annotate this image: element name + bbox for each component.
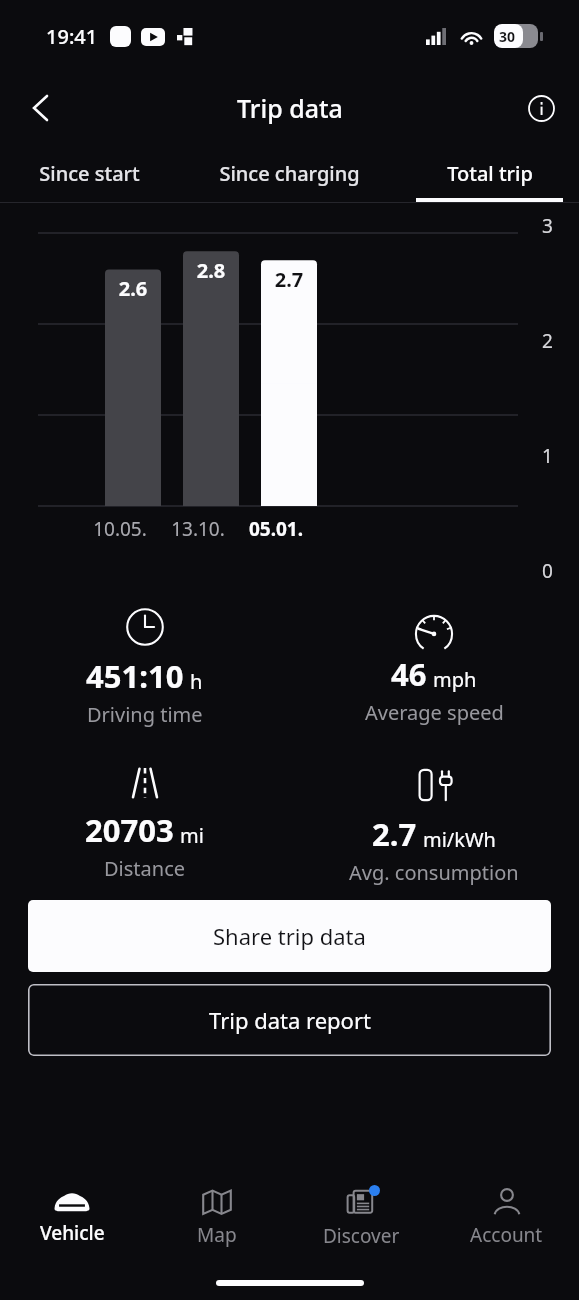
staticText: Avg. consumption <box>349 859 519 886</box>
staticText: 19:41 <box>46 23 98 50</box>
staticText: 05.01. <box>248 516 304 542</box>
button[interactable]: Information <box>519 86 563 130</box>
button[interactable]: Trip data report <box>28 984 551 1056</box>
button[interactable]: Account <box>434 1170 579 1266</box>
staticText: Average speed <box>365 699 504 726</box>
staticText: 2.7 <box>372 813 417 855</box>
button[interactable]: Vehicle <box>0 1170 144 1266</box>
button[interactable]: Since charging <box>178 144 400 202</box>
staticText: 30 <box>499 27 516 46</box>
staticText: 46 <box>391 653 427 695</box>
staticText: 10.05. <box>92 516 148 542</box>
staticText: 13.10. <box>170 516 226 542</box>
staticText: 20703 <box>85 809 174 851</box>
staticText: Since start <box>39 160 140 187</box>
staticText: Driving time <box>87 701 203 728</box>
staticText: mi/kWh <box>423 826 496 853</box>
button[interactable]: Discover <box>289 1170 434 1266</box>
staticText: 0 <box>542 558 553 584</box>
staticText: Discover <box>323 1223 400 1249</box>
button[interactable]: Since start <box>0 144 178 202</box>
staticText: Share trip data <box>213 921 366 951</box>
staticText: 1 <box>542 443 553 469</box>
staticText: Account <box>470 1222 543 1248</box>
staticText: Trip data report <box>209 1005 371 1035</box>
button[interactable]: Back <box>14 82 66 134</box>
button[interactable]: Map <box>144 1170 289 1266</box>
staticText: mph <box>433 666 477 693</box>
staticText: 451:10 <box>86 655 184 697</box>
staticText: 2.8 <box>183 257 239 284</box>
staticText: 2.7 <box>261 266 317 293</box>
staticText: 2.6 <box>105 275 161 302</box>
button[interactable]: Share trip data <box>28 900 551 972</box>
staticText: mi <box>180 822 204 849</box>
staticText: 2 <box>542 328 553 354</box>
staticText: 3 <box>542 213 553 239</box>
button[interactable]: Total trip <box>400 144 579 202</box>
staticText: Distance <box>104 855 186 882</box>
staticText: Trip data <box>237 91 343 125</box>
staticText: Since charging <box>219 160 360 187</box>
staticText: Map <box>197 1222 237 1248</box>
staticText: Total trip <box>447 160 533 187</box>
staticText: Vehicle <box>40 1220 105 1246</box>
staticText: h <box>190 668 203 695</box>
